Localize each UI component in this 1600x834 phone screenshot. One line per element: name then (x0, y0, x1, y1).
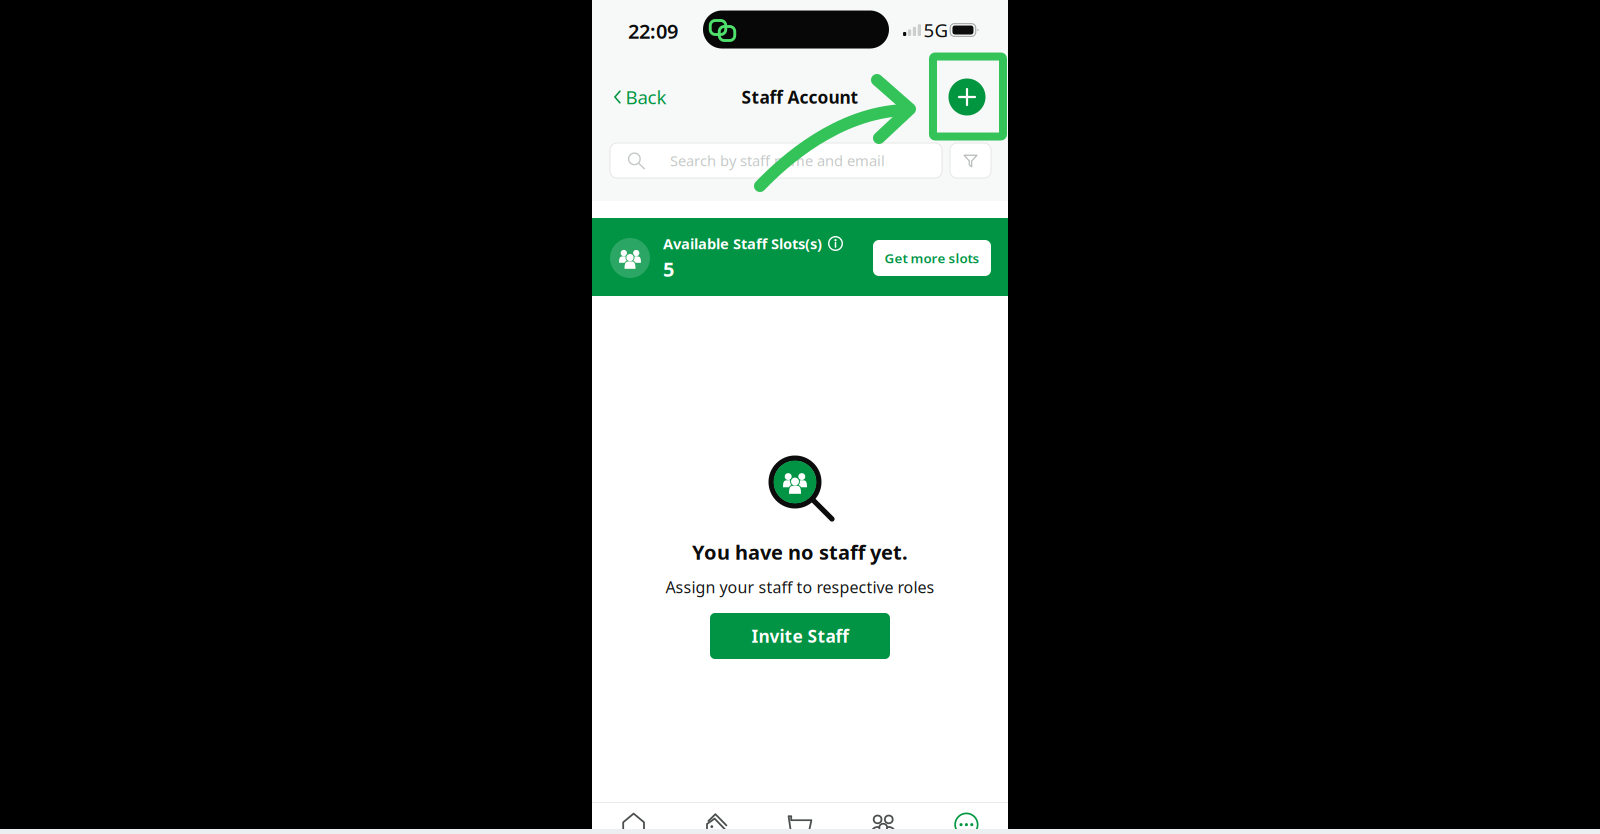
button[interactable]: Invite Staff (710, 613, 890, 659)
button[interactable]: Filter (950, 143, 991, 178)
button[interactable]: Home (592, 811, 675, 834)
staticText: You have no staff yet. (692, 539, 908, 565)
staticText: Back (625, 85, 666, 109)
staticText: 5 (663, 256, 674, 282)
button[interactable]: More (925, 811, 1008, 834)
staticText: 22:09 (628, 18, 678, 44)
button[interactable]: Add staff (945, 75, 989, 119)
button[interactable]: Orders (758, 811, 842, 834)
button[interactable]: Customers (842, 811, 925, 834)
button[interactable]: Search by staff name and email (610, 143, 942, 178)
button[interactable]: Get more slots (873, 240, 991, 276)
button[interactable]: Offers (675, 811, 758, 834)
staticText: Available Staff Slots(s) (663, 234, 822, 253)
staticText: Assign your staff to respective roles (665, 576, 934, 598)
button[interactable]: Back (607, 78, 672, 116)
staticText: Get more slots (884, 249, 979, 267)
staticText: Staff Account (741, 85, 858, 108)
staticText: Invite Staff (751, 624, 848, 647)
staticText: Search by staff name and email (670, 151, 885, 170)
staticText: 5G (923, 18, 948, 42)
